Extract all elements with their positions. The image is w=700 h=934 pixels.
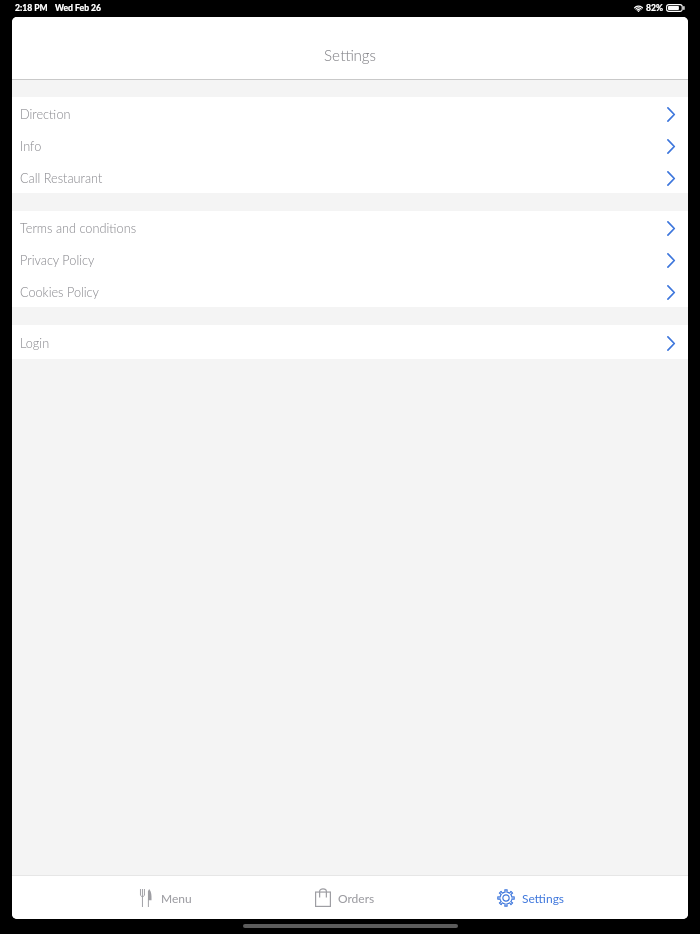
- button[interactable]: Orders tab: [315, 876, 375, 919]
- staticText: Call Restaurant: [20, 170, 103, 185]
- staticText: Menu: [161, 891, 192, 905]
- staticText: Settings: [522, 891, 565, 905]
- staticText: 2:18 PM: [15, 3, 48, 13]
- staticText: Settings: [324, 46, 377, 64]
- other: Settings tab: [497, 889, 515, 907]
- other: Menu tab: [140, 889, 152, 907]
- button[interactable]: Terms and conditions: [12, 211, 688, 243]
- button[interactable]: Cookies Policy: [12, 275, 688, 307]
- staticText: Terms and conditions: [20, 220, 137, 235]
- staticText: Direction: [20, 106, 71, 121]
- button[interactable]: Call Restaurant: [12, 161, 688, 193]
- button[interactable]: Direction: [12, 97, 688, 129]
- button[interactable]: Menu tab: [140, 876, 192, 919]
- staticText: Privacy Policy: [20, 252, 95, 267]
- button[interactable]: Info: [12, 129, 688, 161]
- staticText: Cookies Policy: [20, 284, 99, 299]
- button[interactable]: Login: [12, 325, 688, 359]
- staticText: Login: [20, 335, 50, 350]
- other: Orders tab: [315, 889, 331, 907]
- staticText: Wed Feb 26: [55, 3, 102, 13]
- button[interactable]: Settings tab: [497, 876, 565, 919]
- staticText: Info: [20, 138, 42, 153]
- button[interactable]: Privacy Policy: [12, 243, 688, 275]
- staticText: Orders: [338, 891, 375, 905]
- staticText: 82%: [646, 3, 664, 13]
